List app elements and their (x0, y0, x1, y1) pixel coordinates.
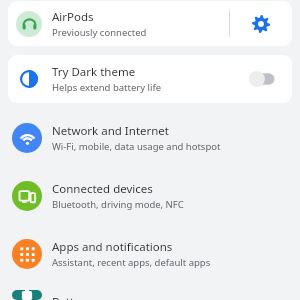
staticText: Helps extend battery life (52, 81, 162, 94)
staticText: Bluetooth, driving mode, NFC (52, 198, 184, 211)
button[interactable]: Try Dark theme toggle (234, 55, 292, 103)
staticText: AirPods (52, 9, 94, 25)
staticText: Wi-Fi, mobile, data usage and hotspot (52, 140, 221, 153)
button[interactable]: AirPods (8, 1, 292, 46)
staticText: Previously connected (52, 26, 147, 39)
button[interactable]: Apps and notifications (0, 237, 300, 271)
staticText: Apps and notifications (52, 239, 173, 255)
staticText: Network and Internet (52, 123, 170, 139)
button[interactable]: Network and Internet (0, 121, 300, 155)
button[interactable]: Battery (0, 290, 300, 300)
staticText: Battery (52, 294, 92, 300)
button[interactable]: Try Dark theme (8, 55, 292, 103)
staticText: Try Dark theme (52, 64, 136, 80)
staticText: Connected devices (52, 181, 153, 197)
staticText: Assistant, recent apps, default apps (52, 256, 211, 269)
button[interactable]: AirPods settings (230, 1, 292, 46)
button[interactable]: Connected devices (0, 179, 300, 213)
